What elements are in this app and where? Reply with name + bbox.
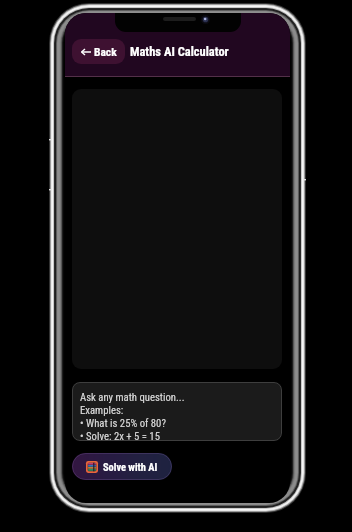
staticText: Maths AI Calculator <box>130 44 229 59</box>
staticText: Ask any math question... <box>80 391 185 404</box>
staticText: • Solve: 2x + 5 = 15 <box>80 430 160 441</box>
staticText: Examples: <box>80 404 124 417</box>
button[interactable]: Ask any math question... <box>72 382 282 441</box>
staticText: Solve with AI <box>103 461 158 473</box>
staticText: Back <box>94 45 117 58</box>
staticText: • What is 25% of 80? <box>80 417 166 430</box>
button[interactable]: Back <box>72 39 125 64</box>
button[interactable]: Solve with AI <box>72 453 172 480</box>
